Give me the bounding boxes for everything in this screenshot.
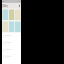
- button[interactable]: Menu: [2, 3, 4, 8]
- button[interactable]: [2, 9, 8, 20]
- button[interactable]: [15, 21, 21, 32]
- staticText: 9:30: [3, 0, 4, 3]
- button[interactable]: [2, 21, 8, 32]
- staticText: Gallery: [4, 4, 8, 8]
- button[interactable]: [2, 40, 21, 47]
- button[interactable]: [2, 47, 21, 54]
- button[interactable]: Search: [19, 3, 21, 8]
- button[interactable]: [2, 33, 21, 40]
- button[interactable]: [9, 9, 14, 20]
- button[interactable]: [2, 54, 21, 60]
- button[interactable]: [9, 21, 14, 32]
- button[interactable]: [15, 9, 21, 20]
